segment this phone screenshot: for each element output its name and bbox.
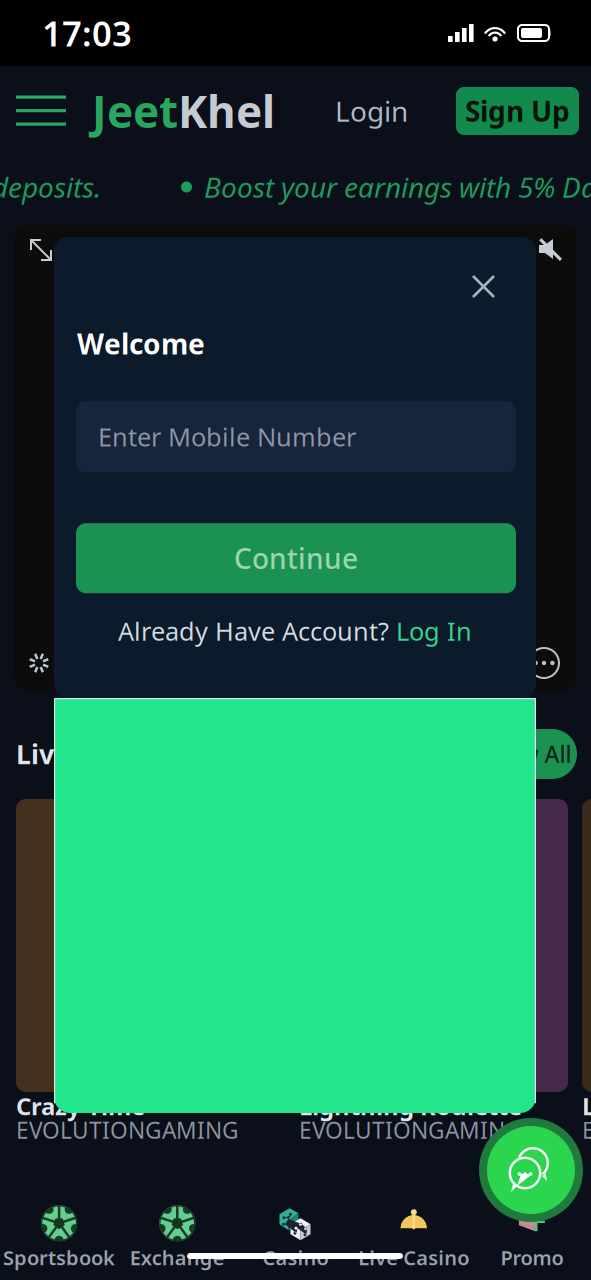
button[interactable]: Log In xyxy=(396,614,472,648)
staticText: Casino xyxy=(262,1244,328,1271)
staticText: Khel xyxy=(178,82,275,140)
staticText: Welcome xyxy=(77,325,205,362)
button[interactable]: Login xyxy=(325,80,418,142)
staticText: View All xyxy=(487,739,571,769)
staticText: Enter Mobile Number xyxy=(98,420,356,453)
staticText: EVOLUTIONGAMING xyxy=(16,1115,239,1145)
button[interactable]: Sign Up xyxy=(456,87,579,135)
staticText: Exchange xyxy=(130,1244,225,1271)
button[interactable]: Live chat support xyxy=(479,1118,583,1222)
staticText: EVOLUTIONGAMING xyxy=(582,1115,591,1145)
staticText: Live Casino xyxy=(16,736,165,772)
staticText: Lightning Roulette xyxy=(299,1090,522,1122)
staticText: Continue xyxy=(234,540,358,577)
staticText: Login xyxy=(335,92,408,130)
button[interactable]: Menu xyxy=(16,95,66,126)
staticText: 17:03 xyxy=(42,10,132,56)
staticText: Live Casino xyxy=(358,1244,469,1271)
staticText: Live xyxy=(582,1090,591,1122)
staticText: Promo xyxy=(500,1244,563,1271)
staticText: Log In xyxy=(396,614,472,648)
button[interactable]: Live Casino xyxy=(355,1196,473,1280)
staticText: Already Have Account? xyxy=(118,614,396,648)
staticText: Sign Up xyxy=(465,92,570,130)
button[interactable]: Casino xyxy=(236,1196,355,1280)
button[interactable]: Continue xyxy=(76,523,516,593)
staticText: Boost your earnings with 5% Daily Ca xyxy=(204,168,591,206)
staticText: deposits. xyxy=(0,168,101,206)
staticText: Crazy Time xyxy=(16,1090,145,1122)
button[interactable]: View All xyxy=(482,729,577,779)
staticText: Jeet xyxy=(92,82,178,140)
staticText: Sportsbook xyxy=(3,1244,115,1271)
staticText: EVOLUTIONGAMING xyxy=(299,1115,522,1145)
button[interactable]: Close xyxy=(472,275,495,298)
button[interactable]: Promo xyxy=(473,1196,591,1280)
button[interactable]: Exchange xyxy=(118,1196,236,1280)
button[interactable]: Sportsbook xyxy=(0,1196,118,1280)
